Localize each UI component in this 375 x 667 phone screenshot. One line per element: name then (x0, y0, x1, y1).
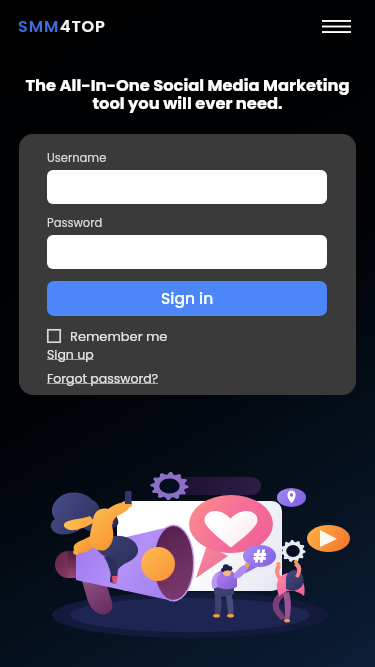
staticText: Sign in (161, 288, 214, 310)
button[interactable]: SMM (18, 15, 106, 37)
staticText: Password (47, 215, 103, 231)
button[interactable]: Forgot password? (47, 370, 159, 387)
button[interactable]: Sign in (47, 281, 327, 316)
button[interactable]: Menu (318, 8, 354, 44)
button[interactable]: Sign up (47, 346, 94, 363)
staticText: Username (47, 150, 107, 166)
staticText: 4TOP (60, 15, 106, 37)
button[interactable] (47, 235, 327, 269)
button[interactable] (47, 170, 327, 204)
button[interactable]: Remember me (47, 327, 168, 345)
staticText: The All-In-One Social Media Marketing to… (8, 74, 367, 115)
staticText: SMM (18, 15, 60, 37)
staticText: Remember me (70, 327, 168, 345)
